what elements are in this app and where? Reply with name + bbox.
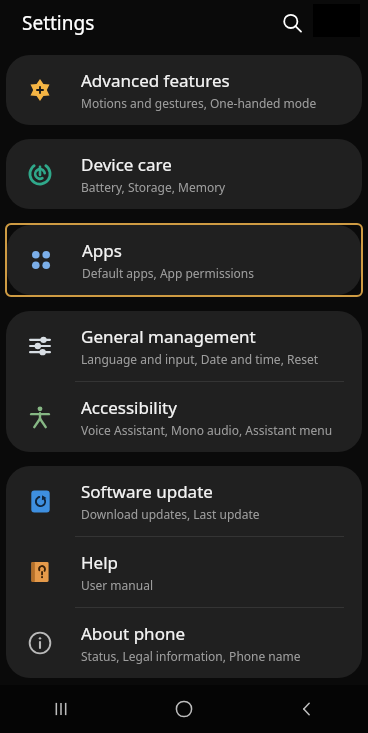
staticText: Language and input, Date and time, Reset xyxy=(81,351,319,367)
staticText: Device care xyxy=(81,153,172,176)
button[interactable]: Home xyxy=(122,685,245,733)
staticText: General management xyxy=(81,325,256,348)
staticText: User manual xyxy=(81,577,153,593)
button[interactable]: Search xyxy=(278,9,306,37)
button[interactable]: Advanced features xyxy=(6,55,362,125)
staticText: Apps xyxy=(82,239,122,262)
button[interactable]: About phone xyxy=(6,608,362,678)
staticText: Settings xyxy=(22,10,95,36)
staticText: Advanced features xyxy=(81,69,230,92)
button[interactable]: General management xyxy=(6,311,362,381)
button[interactable]: Software update xyxy=(6,466,362,536)
button[interactable]: Recents xyxy=(0,685,122,733)
button[interactable]: Accessibility xyxy=(6,382,362,452)
button[interactable]: Back xyxy=(245,685,368,733)
staticText: About phone xyxy=(81,622,186,645)
staticText: Status, Legal information, Phone name xyxy=(81,648,301,664)
staticText: Battery, Storage, Memory xyxy=(81,179,226,195)
button[interactable]: Help xyxy=(6,537,362,607)
button[interactable]: Device care xyxy=(6,139,362,209)
staticText: Download updates, Last update xyxy=(81,506,260,522)
staticText: Default apps, App permissions xyxy=(82,265,254,281)
staticText: Motions and gestures, One-handed mode xyxy=(81,95,317,111)
staticText: Accessibility xyxy=(81,396,177,419)
button[interactable]: Apps xyxy=(7,225,361,295)
staticText: Help xyxy=(81,551,119,574)
staticText: Software update xyxy=(81,480,213,503)
staticText: Voice Assistant, Mono audio, Assistant m… xyxy=(81,422,333,438)
